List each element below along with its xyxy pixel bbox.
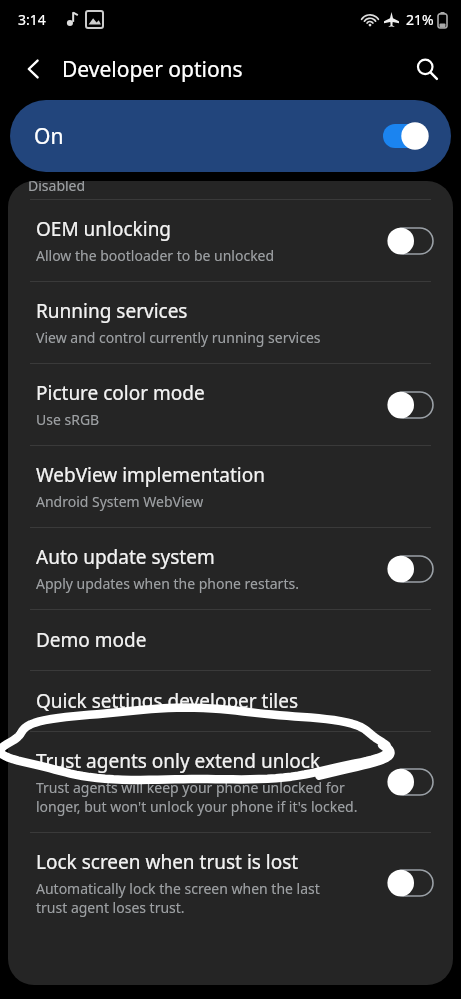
button[interactable]: On [10,100,451,172]
staticText: Allow the bootloader to be unlocked [36,246,275,265]
staticText: Apply updates when the phone restarts. [36,574,299,593]
button[interactable]: Picture color mode [8,364,453,445]
staticText: Developer options [62,55,243,84]
button[interactable]: WebView implementation [8,446,453,527]
staticText: Lock screen when trust is lost [36,849,299,875]
staticText: Android System WebView [36,492,204,511]
staticText: Auto update system [36,544,215,570]
staticText: WebView implementation [36,462,265,488]
staticText: On [34,122,64,151]
staticText: Disabled [28,181,86,194]
button[interactable]: Running services [8,282,453,363]
staticText: 3:14 [18,10,46,29]
button[interactable]: Quick settings developer tiles [8,671,453,731]
staticText: Demo mode [36,627,147,653]
staticText: Running services [36,298,188,324]
staticText: Automatically lock the screen when the l… [36,879,320,917]
staticText: Picture color mode [36,380,205,406]
staticText: View and control currently running servi… [36,328,321,347]
staticText: Quick settings developer tiles [36,688,299,714]
button[interactable]: Lock screen when trust is lost [8,833,453,933]
button[interactable]: OEM unlocking [8,200,453,281]
staticText: Use sRGB [36,410,100,429]
button[interactable]: Trust agents only extend unlock [8,732,453,832]
button[interactable]: Demo mode [8,610,453,670]
button[interactable]: Search [405,47,449,91]
button[interactable]: Back [12,47,56,91]
staticText: OEM unlocking [36,216,172,242]
button[interactable]: Auto update system [8,528,453,609]
staticText: Trust agents will keep your phone unlock… [36,778,358,816]
staticText: 21% [406,10,434,29]
staticText: Trust agents only extend unlock [36,748,321,774]
